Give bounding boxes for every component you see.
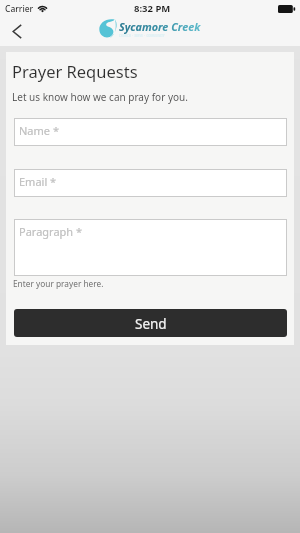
button[interactable]: Paragraph *: [14, 219, 287, 276]
button[interactable]: Back: [3, 17, 31, 45]
button[interactable]: Send: [14, 309, 287, 337]
staticText: Name *: [19, 123, 59, 138]
button[interactable]: Email *: [14, 169, 287, 197]
staticText: Prayer Requests: [12, 60, 138, 82]
staticText: CHURCH · SERVE · COMMUNITY: [119, 34, 165, 38]
staticText: Paragraph *: [19, 224, 83, 239]
staticText: Email *: [19, 174, 57, 189]
staticText: Send: [135, 315, 167, 333]
staticText: Let us know how we can pray for you.: [12, 90, 188, 104]
staticText: Sycamore Creek: [119, 19, 201, 34]
button[interactable]: Name *: [14, 118, 287, 146]
staticText: Enter your prayer here.: [13, 278, 104, 289]
staticText: Carrier: [5, 3, 34, 15]
staticText: 8:32 PM: [134, 2, 171, 15]
